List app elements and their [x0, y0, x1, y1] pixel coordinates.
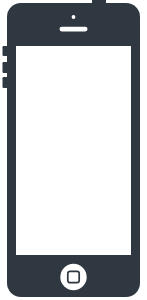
button[interactable]: Smartphone illustration: [0, 0, 147, 300]
